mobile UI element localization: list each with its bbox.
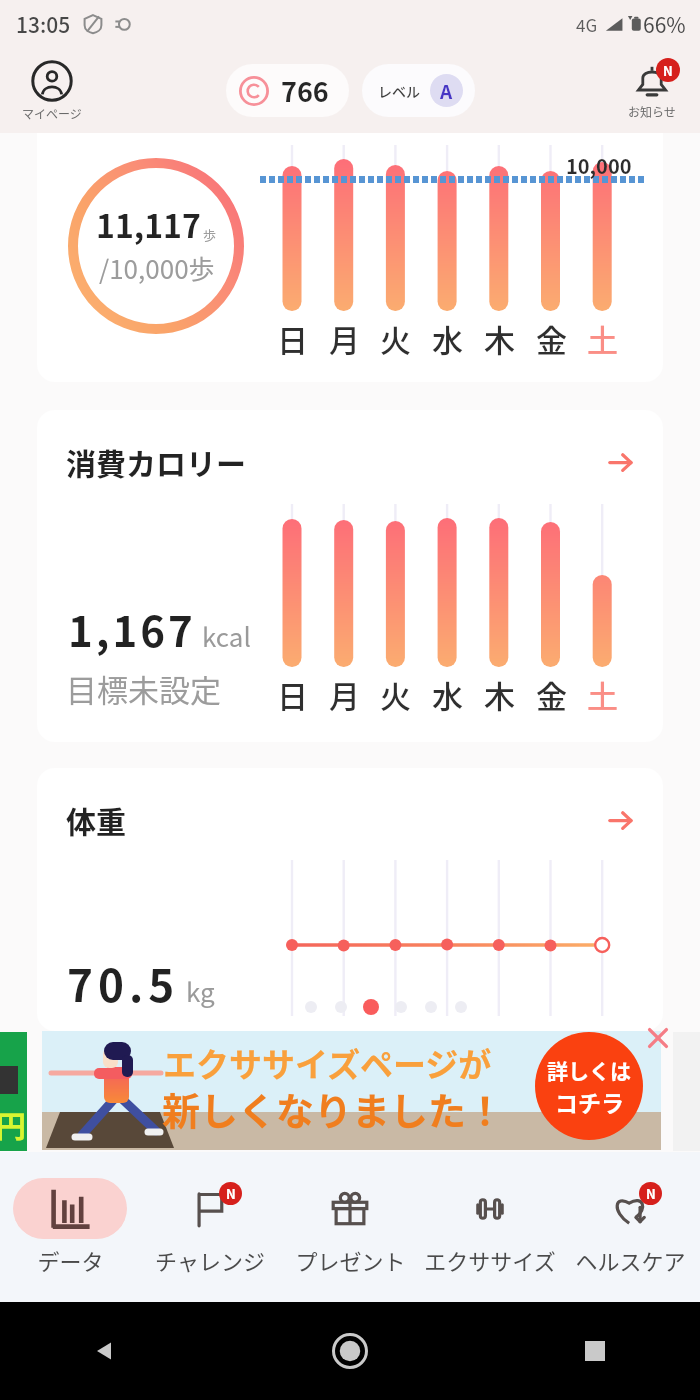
staticText: プレゼント [295,1244,406,1276]
button[interactable]: 11,117 [37,133,663,382]
staticText: N [226,1184,236,1203]
button[interactable]: N [140,1152,280,1302]
staticText: 月 [329,316,359,361]
staticText: kcal [202,617,251,655]
staticText: A [440,77,453,105]
staticText: お知らせ [628,103,676,120]
staticText: 金 [536,316,566,361]
staticText: 766 [281,71,329,110]
button[interactable]: エクササイズページが [42,1031,661,1150]
staticText: マイページ [22,105,82,122]
button[interactable]: レベル [362,64,475,117]
button[interactable]: お知らせ [624,62,680,120]
staticText: 詳しくは [547,1055,631,1085]
button[interactable]: 円 [0,1032,27,1151]
staticText: kg [186,972,215,1010]
staticText: 日 [277,316,307,361]
staticText: 日 [277,672,307,717]
staticText: 木 [484,316,514,361]
staticText: 4G [576,12,598,37]
staticText: 土 [587,316,617,361]
button[interactable]: 詳細 [607,448,635,476]
staticText: N [646,1184,656,1203]
staticText: 13:05 [16,9,71,39]
staticText: 円 [0,1102,23,1145]
button[interactable]: データ [0,1152,140,1302]
button[interactable]: 詳細 [607,806,635,834]
staticText: エクササイズページが [163,1039,492,1087]
staticText: 月 [329,672,359,717]
button[interactable]: エクササイズ [420,1152,560,1302]
button[interactable]: 766 [226,64,349,117]
staticText: 体重 [66,798,126,841]
staticText: 11,117 [96,201,201,247]
staticText: /10,000歩 [99,249,215,287]
staticText: 木 [484,672,514,717]
staticText: ヘルスケア [575,1244,686,1276]
button[interactable]: ホーム [325,1326,375,1376]
staticText: N [663,61,673,80]
button[interactable]: プレゼント [280,1152,420,1302]
staticText: 1,167 [68,598,196,659]
staticText: 火 [380,672,410,717]
staticText: 歩 [203,225,217,244]
staticText: データ [37,1244,104,1276]
staticText: 目標未設定 [66,666,221,711]
staticText: 66% [643,9,686,39]
staticText: 消費カロリー [66,440,246,483]
button[interactable]: 戻る [80,1326,130,1376]
staticText: 水 [432,316,462,361]
staticText: エクササイズ [424,1244,556,1276]
button[interactable]: 体重 [37,768,663,1031]
staticText: 土 [587,672,617,717]
button[interactable]: 最近のアプリ [570,1326,620,1376]
button[interactable]: マイページ [18,60,86,122]
staticText: 70.5 [67,951,180,1015]
button[interactable]: 閉じる [643,1023,673,1053]
staticText: レベル [378,81,420,101]
staticText: 火 [380,316,410,361]
staticText: コチラ [555,1085,624,1118]
button[interactable]: N [560,1152,700,1302]
staticText: チャレンジ [155,1244,265,1276]
staticText: 金 [536,672,566,717]
staticText: 新しくなりました！ [162,1081,505,1136]
staticText: 10,000 [566,151,632,180]
staticText: 水 [432,672,462,717]
button[interactable]: 消費カロリー [37,410,663,742]
